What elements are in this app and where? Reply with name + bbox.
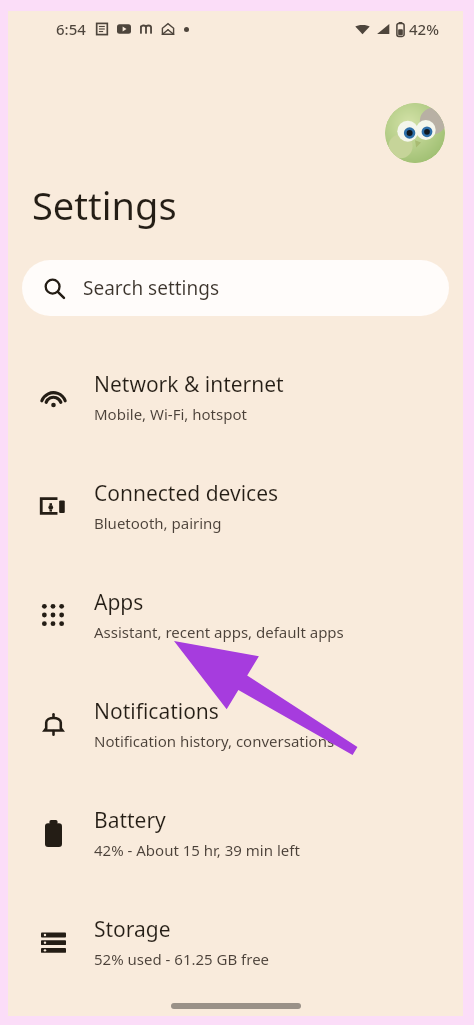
button[interactable]: Battery xyxy=(8,778,463,887)
staticText: Notifications xyxy=(94,697,219,726)
staticText: 6:54 xyxy=(56,19,86,39)
staticText: Connected devices xyxy=(94,479,279,508)
staticText: Notification history, conversations xyxy=(94,731,335,751)
staticText: Bluetooth, pairing xyxy=(94,513,222,533)
staticText: Search settings xyxy=(83,275,220,301)
button[interactable]: Connected devices xyxy=(8,451,463,560)
staticText: 42% xyxy=(409,19,439,39)
button[interactable]: Network & internet xyxy=(8,342,463,451)
staticText: Storage xyxy=(94,915,171,944)
button[interactable]: Storage xyxy=(8,887,463,996)
button[interactable]: Apps xyxy=(8,560,463,669)
button[interactable]: Account avatar xyxy=(385,103,445,163)
staticText: Network & internet xyxy=(94,370,284,399)
staticText: 52% used - 61.25 GB free xyxy=(94,949,270,969)
staticText: Battery xyxy=(94,806,166,835)
staticText: Settings xyxy=(32,179,177,231)
staticText: Mobile, Wi-Fi, hotspot xyxy=(94,404,247,424)
staticText: 42% - About 15 hr, 39 min left xyxy=(94,840,300,860)
staticText: Assistant, recent apps, default apps xyxy=(94,622,344,642)
button[interactable]: Notifications xyxy=(8,669,463,778)
button[interactable]: Search settings xyxy=(22,260,449,316)
staticText: Apps xyxy=(94,588,144,617)
